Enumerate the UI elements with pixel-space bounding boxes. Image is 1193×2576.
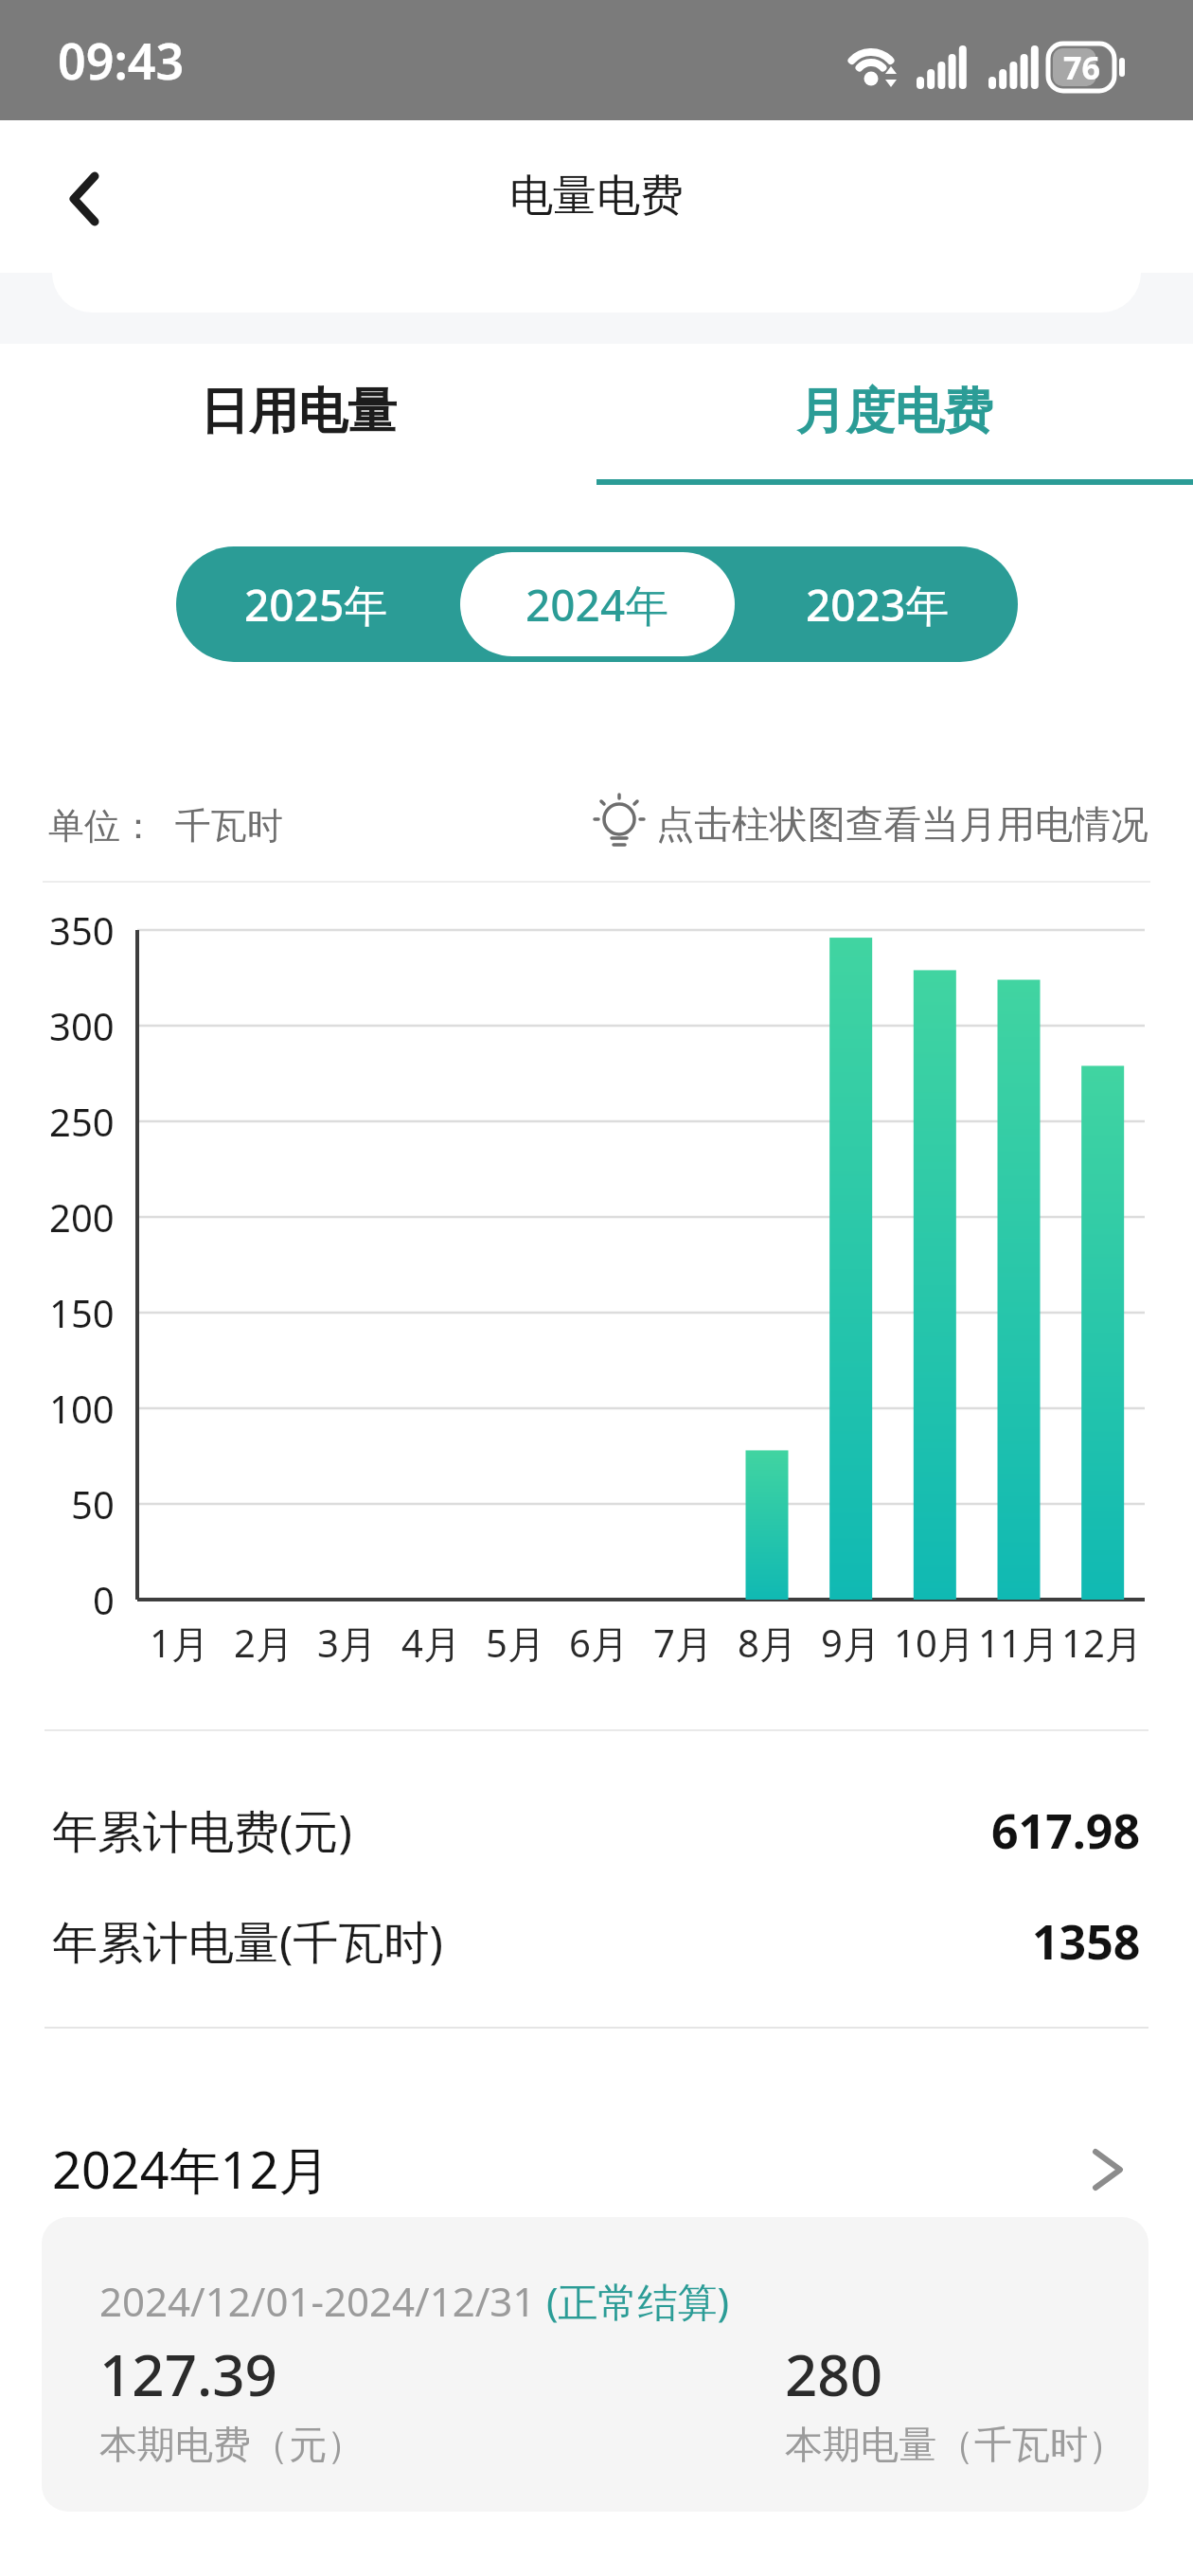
staticText: 50	[71, 1478, 115, 1529]
staticText: 1月	[150, 1617, 209, 1669]
staticText: 12月	[1061, 1617, 1143, 1669]
staticText: 127.39	[99, 2335, 277, 2413]
staticText: 5月	[486, 1617, 545, 1669]
staticText: 150	[49, 1287, 115, 1338]
staticText: 2024年12月	[52, 2134, 330, 2204]
button[interactable]: 月度电费	[596, 365, 1193, 459]
button[interactable]: 2025年	[176, 546, 456, 662]
staticText: 617.98	[991, 1798, 1141, 1863]
staticText: 280	[785, 2335, 882, 2413]
staticText: 250	[49, 1096, 115, 1147]
staticText: 100	[49, 1383, 115, 1434]
staticText: 0	[93, 1574, 115, 1625]
staticText: 2023年	[806, 575, 950, 635]
staticText: 1358	[1032, 1909, 1141, 1974]
staticText: 11月	[978, 1617, 1059, 1669]
staticText: 76	[1063, 45, 1100, 89]
staticText: 10月	[894, 1617, 975, 1669]
staticText: 月度电费	[796, 381, 993, 443]
staticText: 日用电量	[200, 381, 397, 443]
staticText: 8月	[738, 1617, 797, 1669]
staticText: 2月	[234, 1617, 294, 1669]
staticText: 4月	[401, 1617, 461, 1669]
staticText: 09:43	[58, 27, 185, 94]
staticText: 年累计电费(元)	[52, 1799, 352, 1862]
staticText: 7月	[653, 1617, 713, 1669]
button[interactable]: 2024/12/01-2024/12/31	[42, 2217, 1148, 2512]
button[interactable]: 日用电量	[0, 365, 596, 459]
button[interactable]: 2023年	[738, 546, 1018, 662]
staticText: 6月	[569, 1617, 629, 1669]
staticText: 本期电费（元）	[99, 2421, 365, 2468]
staticText: 电量电费	[509, 169, 684, 224]
staticText: 单位： 千瓦时	[48, 799, 283, 849]
button[interactable]: 2024年	[456, 546, 738, 662]
staticText: (正常结算)	[546, 2274, 730, 2328]
staticText: 2024年	[525, 575, 669, 635]
staticText: 点击柱状图查看当月用电情况	[656, 800, 1148, 848]
button[interactable]: 2024年12月	[38, 2121, 1155, 2216]
staticText: 2025年	[244, 575, 388, 635]
staticText: 200	[49, 1191, 115, 1243]
staticText: 9月	[821, 1617, 881, 1669]
staticText: 2024/12/01-2024/12/31	[99, 2274, 546, 2328]
button[interactable]	[38, 152, 133, 246]
staticText: 本期电量（千瓦时）	[785, 2421, 1126, 2468]
staticText: 年累计电量(千瓦时)	[52, 1910, 443, 1973]
staticText: 300	[49, 1000, 115, 1051]
staticText: 350	[49, 904, 115, 956]
staticText: 3月	[317, 1617, 377, 1669]
